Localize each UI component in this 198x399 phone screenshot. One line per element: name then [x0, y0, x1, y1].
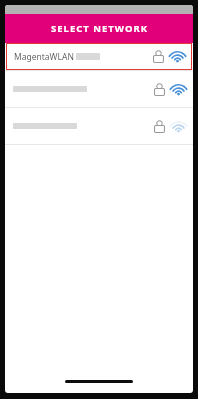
staticText: MagentaWLAN: [14, 51, 74, 63]
staticText: SELECT NETWORK: [51, 22, 148, 35]
other: Secured network: [154, 83, 165, 96]
other: Secured network: [153, 50, 164, 63]
button[interactable]: Secured network: [5, 108, 193, 144]
button[interactable]: MagentaWLAN: [6, 43, 192, 70]
other: Secured network: [154, 120, 165, 133]
other: Signal strength: [172, 121, 185, 132]
other: Signal strength: [171, 51, 184, 62]
other: Signal strength: [172, 84, 185, 95]
button[interactable]: Secured network: [5, 71, 193, 107]
